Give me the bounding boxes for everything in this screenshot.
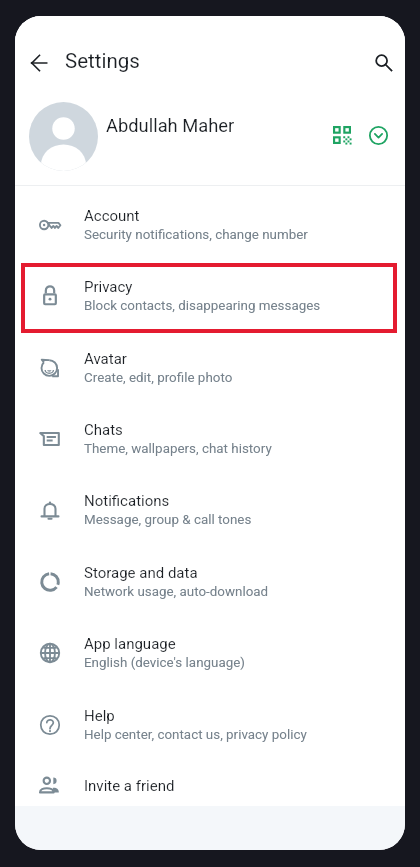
staticText: Network usage, auto-download	[84, 584, 269, 600]
button[interactable]: Search	[367, 46, 399, 78]
staticText: Block contacts, disappearing messages	[84, 298, 321, 314]
staticText: Avatar	[84, 350, 127, 368]
staticText: Notifications	[84, 492, 170, 510]
staticText: Help center, contact us, privacy policy	[84, 727, 307, 743]
staticText: Account	[84, 207, 140, 225]
staticText: Privacy	[84, 278, 133, 296]
button[interactable]: Back	[23, 47, 55, 79]
staticText: Settings	[65, 49, 140, 73]
button[interactable]: Storage and data	[15, 546, 405, 617]
button[interactable]: QR code	[326, 119, 358, 151]
button[interactable]: Notifications	[15, 474, 405, 545]
button[interactable]: Abdullah Maher	[15, 88, 405, 168]
staticText: App language	[84, 635, 176, 653]
button[interactable]: Chats	[15, 403, 405, 474]
button[interactable]: Privacy highlighted	[21, 263, 397, 333]
button[interactable]: App language	[15, 617, 405, 688]
button[interactable]: Help	[15, 689, 405, 760]
button[interactable]: Privacy	[15, 260, 405, 331]
staticText: Chats	[84, 421, 123, 439]
button[interactable]: Show more	[362, 119, 394, 151]
staticText: Storage and data	[84, 564, 198, 582]
button[interactable]: Account	[15, 189, 405, 260]
button[interactable]: Avatar	[15, 332, 405, 403]
staticText: Abdullah Maher	[106, 115, 235, 137]
staticText: Create, edit, profile photo	[84, 370, 233, 386]
staticText: Invite a friend	[84, 777, 175, 795]
staticText: Theme, wallpapers, chat history	[84, 441, 272, 457]
button[interactable]: Invite a friend	[15, 761, 405, 811]
staticText: Message, group & call tones	[84, 512, 252, 528]
staticText: English (device's language)	[84, 655, 246, 671]
staticText: Security notifications, change number	[84, 227, 308, 243]
staticText: Help	[84, 707, 115, 725]
